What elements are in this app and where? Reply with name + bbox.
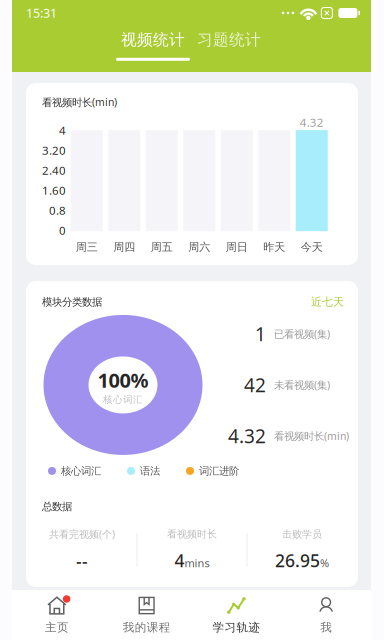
staticText: 未看视频(集) <box>274 378 330 392</box>
staticText: 周六 <box>188 240 210 254</box>
staticText: % <box>320 555 329 570</box>
staticText: 今天 <box>301 240 323 254</box>
staticText: 看视频时长(min) <box>42 95 117 109</box>
staticText: 词汇进阶 <box>199 464 239 477</box>
staticText: 周四 <box>113 240 135 254</box>
staticText: 2.40 <box>42 162 66 178</box>
staticText: 100% <box>97 366 148 393</box>
staticText: 周日 <box>226 240 248 254</box>
staticText: 周五 <box>151 240 173 254</box>
staticText: 学习轨迹 <box>212 620 260 635</box>
staticText: 近七天 <box>311 295 344 309</box>
staticText: 习题统计 <box>197 30 261 50</box>
staticText: 击败学员 <box>282 528 322 540</box>
button[interactable]: 近七天 <box>311 295 344 309</box>
staticText: 0 <box>59 222 66 238</box>
staticText: 语法 <box>140 464 160 477</box>
button[interactable]: 主页 <box>12 590 102 640</box>
staticText: 看视频时长(min) <box>274 429 349 443</box>
button[interactable]: 视频统计 <box>115 26 191 72</box>
staticText: 核心词汇 <box>103 394 143 406</box>
button[interactable]: 学习轨迹 <box>191 590 281 640</box>
staticText: 0.8 <box>49 202 66 218</box>
staticText: 15:31 <box>26 4 57 21</box>
staticText: 4.32 <box>228 423 266 449</box>
staticText: mins <box>184 555 209 570</box>
staticText: 核心词汇 <box>61 464 101 477</box>
staticText: 4.32 <box>300 114 324 130</box>
staticText: 主页 <box>45 620 69 635</box>
staticText: 42 <box>244 372 266 398</box>
button[interactable]: 我的课程 <box>102 590 192 640</box>
staticText: 4 <box>59 122 66 138</box>
staticText: 26.95 <box>275 548 320 572</box>
staticText: 视频统计 <box>121 30 185 50</box>
button[interactable]: 我 <box>281 590 371 640</box>
staticText: 模块分类数据 <box>42 295 102 308</box>
staticText: 周三 <box>76 240 98 254</box>
staticText: 3.20 <box>42 142 66 158</box>
staticText: 昨天 <box>263 240 285 254</box>
staticText: 总数据 <box>42 500 72 513</box>
staticText: 1 <box>255 321 266 347</box>
staticText: 我 <box>320 620 332 635</box>
staticText: 我的课程 <box>123 620 171 635</box>
button[interactable]: 习题统计 <box>191 26 267 72</box>
staticText: 共看完视频(个) <box>49 527 115 541</box>
staticText: 1.60 <box>42 182 66 198</box>
staticText: 4 <box>174 548 184 572</box>
staticText: 已看视频(集) <box>274 327 330 341</box>
staticText: 看视频时长 <box>167 528 217 540</box>
staticText: -- <box>76 549 88 573</box>
